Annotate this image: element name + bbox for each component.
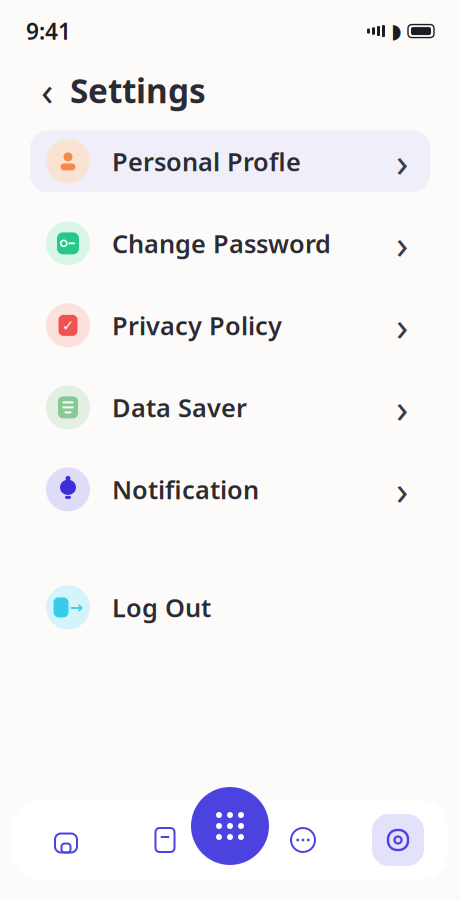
staticText: ›	[396, 299, 408, 352]
button[interactable]: Bookmarks	[135, 809, 195, 871]
staticText: ‹	[41, 64, 53, 117]
button[interactable]: Apps	[191, 787, 269, 865]
button[interactable]: Change Password	[30, 212, 430, 274]
staticText: Change Password	[112, 226, 331, 260]
staticText: 9:41	[26, 16, 71, 46]
staticText: ›	[396, 217, 408, 270]
button[interactable]: Notification	[30, 458, 430, 520]
staticText: Notification	[112, 472, 259, 506]
staticText: ✓	[62, 317, 74, 334]
staticText: Privacy Policy	[112, 308, 282, 342]
staticText: Personal Profle	[112, 144, 301, 178]
button[interactable]: Home	[36, 809, 96, 871]
button[interactable]: Messages	[273, 809, 333, 871]
staticText: →	[69, 598, 82, 616]
button[interactable]: Data Saver	[30, 376, 430, 438]
staticText: ›	[396, 463, 408, 516]
button[interactable]: Personal Profle	[30, 130, 430, 192]
staticText: Log Out	[112, 590, 211, 624]
staticText: ◗	[391, 20, 402, 42]
staticText: Settings	[70, 68, 206, 112]
button[interactable]: Back	[30, 70, 64, 110]
staticText: ›	[396, 135, 408, 188]
staticText: Data Saver	[112, 390, 247, 424]
button[interactable]: ✓	[30, 294, 430, 356]
button[interactable]: Settings	[372, 814, 424, 866]
button[interactable]: →	[30, 576, 430, 638]
staticText: ›	[396, 381, 408, 434]
